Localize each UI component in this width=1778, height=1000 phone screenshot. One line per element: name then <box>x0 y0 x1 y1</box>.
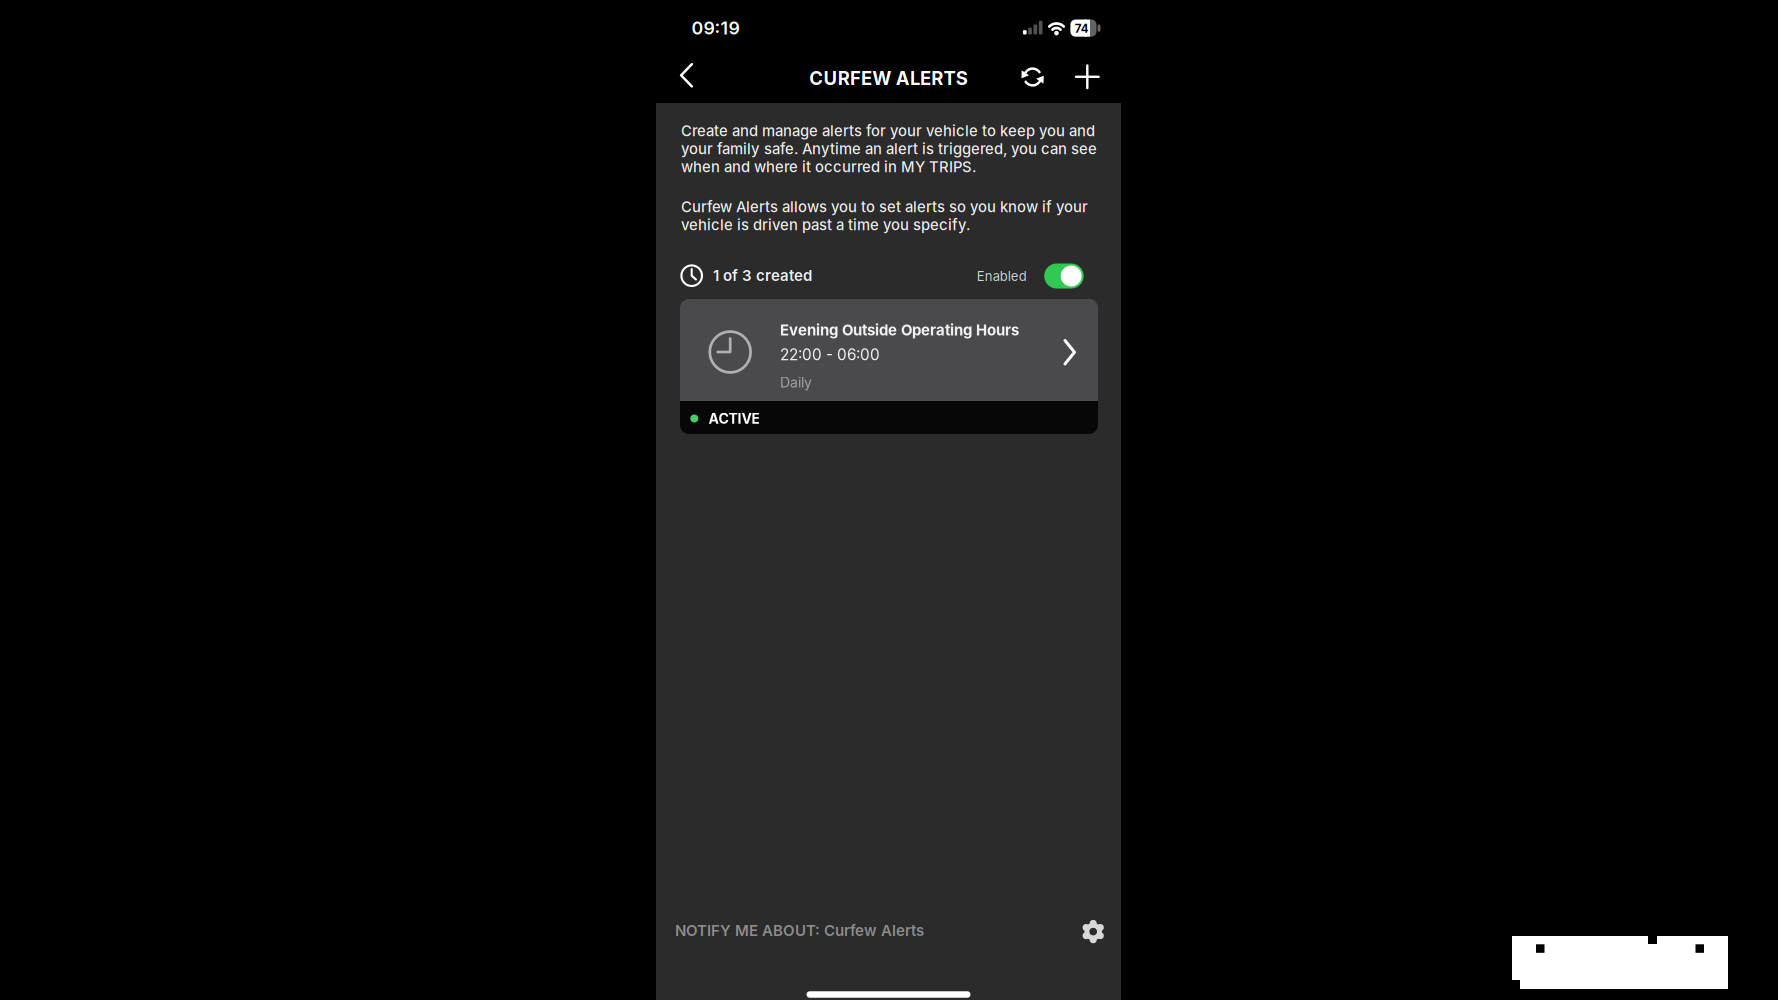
button[interactable]: Notification settings <box>1075 914 1111 950</box>
staticText: Curfew Alerts allows you to set alerts s… <box>681 198 1088 234</box>
staticText: NOTIFY ME ABOUT: Curfew Alerts <box>675 921 924 940</box>
staticText: Daily <box>780 374 812 391</box>
staticText: 22:00 - 06:00 <box>780 345 880 364</box>
staticText: CURFEW ALERTS <box>809 67 968 89</box>
staticText: Create and manage alerts for your vehicl… <box>681 122 1097 176</box>
staticText: 09:19 <box>691 17 739 39</box>
button[interactable]: Add <box>1067 57 1107 97</box>
staticText: ACTIVE <box>708 410 760 427</box>
button[interactable]: Refresh <box>1013 57 1053 97</box>
button[interactable]: Evening Outside Operating Hours <box>680 299 1098 434</box>
button[interactable]: Back <box>669 55 705 95</box>
staticText: 1 of 3 created <box>713 266 812 285</box>
staticText: 74 <box>1075 22 1089 35</box>
staticText: Evening Outside Operating Hours <box>780 321 1019 339</box>
button[interactable]: Enabled <box>1044 263 1084 288</box>
staticText: Enabled <box>977 268 1027 284</box>
